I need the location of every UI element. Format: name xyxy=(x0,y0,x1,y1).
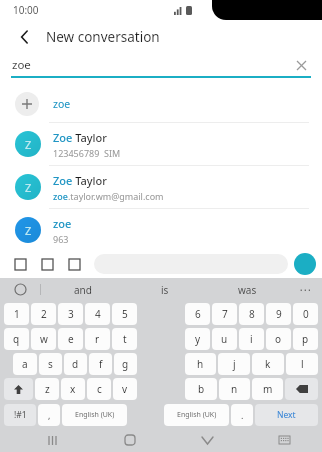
button[interactable]: English (UK) xyxy=(62,404,127,426)
button[interactable]: was xyxy=(206,278,288,301)
staticText: c xyxy=(97,382,102,396)
button[interactable]: s xyxy=(39,353,62,375)
button[interactable]: m xyxy=(252,378,283,400)
button[interactable]: Z xyxy=(5,209,317,251)
staticText: v xyxy=(122,382,128,396)
staticText: p xyxy=(302,332,309,346)
staticText: Z xyxy=(25,223,32,238)
button[interactable]: Z xyxy=(5,166,317,208)
button[interactable]: q xyxy=(4,328,29,350)
staticText: Next xyxy=(277,409,296,421)
button[interactable]: backspace xyxy=(285,378,318,400)
button[interactable]: r xyxy=(85,328,110,350)
button[interactable]: g xyxy=(114,353,137,375)
staticText: Z xyxy=(25,137,32,152)
staticText: j xyxy=(233,357,236,371)
staticText: . xyxy=(241,409,244,421)
button[interactable]: Home xyxy=(116,428,144,452)
button[interactable]: d xyxy=(64,353,87,375)
button[interactable]: !#1 xyxy=(4,404,36,426)
staticText: i xyxy=(250,332,253,346)
staticText: r xyxy=(95,332,100,346)
button[interactable]: 5 xyxy=(112,303,137,325)
button[interactable]: 6 xyxy=(185,303,210,325)
staticText: 7 xyxy=(222,307,228,321)
button[interactable]: c xyxy=(87,378,111,400)
button[interactable]: Z xyxy=(5,123,317,165)
button[interactable]: h xyxy=(185,353,216,375)
button[interactable]: Hide keyboard xyxy=(193,428,221,452)
button[interactable]: x xyxy=(61,378,85,400)
button[interactable]: 3 xyxy=(58,303,83,325)
button[interactable]: 1 xyxy=(4,303,29,325)
button[interactable]: k xyxy=(252,353,284,375)
staticText: s xyxy=(48,357,53,371)
button[interactable]: j xyxy=(218,353,250,375)
button[interactable]: 2 xyxy=(31,303,56,325)
button[interactable]: 4 xyxy=(85,303,110,325)
staticText: a xyxy=(22,357,28,371)
staticText: !#1 xyxy=(14,409,27,421)
staticText: zoe xyxy=(53,216,72,231)
staticText: 123456789 SIM xyxy=(53,147,121,159)
button[interactable]: o xyxy=(266,328,291,350)
button[interactable]: n xyxy=(219,378,250,400)
button[interactable]: Attach 2 xyxy=(64,254,84,274)
button[interactable]: 0 xyxy=(293,303,318,325)
staticText: 10:00 xyxy=(13,3,39,17)
staticText: 0 xyxy=(303,307,309,321)
button[interactable]: Emoji xyxy=(0,278,40,301)
button[interactable]: y xyxy=(185,328,210,350)
staticText: e xyxy=(68,332,74,346)
button[interactable]: shift xyxy=(4,378,33,400)
staticText: ⋯ xyxy=(299,283,311,297)
staticText: m xyxy=(263,382,273,396)
button[interactable]: , xyxy=(38,404,60,426)
button[interactable]: More xyxy=(288,278,322,301)
staticText: English (UK) xyxy=(177,410,217,420)
button[interactable]: v xyxy=(113,378,137,400)
button[interactable]: l xyxy=(286,353,318,375)
staticText: 6 xyxy=(195,307,201,321)
staticText: 963 xyxy=(53,233,69,245)
button[interactable]: Keyboard xyxy=(270,428,298,452)
button[interactable]: u xyxy=(212,328,237,350)
button[interactable]: is xyxy=(124,278,206,301)
button[interactable]: t xyxy=(112,328,137,350)
staticText: 1 xyxy=(14,307,20,321)
button[interactable]: Next xyxy=(255,404,318,426)
button[interactable]: Attach 0 xyxy=(10,254,30,274)
button[interactable]: z xyxy=(35,378,59,400)
button[interactable]: English (UK) xyxy=(164,404,229,426)
button[interactable]: a xyxy=(13,353,37,375)
staticText: Zoe Taylor xyxy=(53,173,107,188)
button[interactable]: b xyxy=(185,378,217,400)
button[interactable]: i xyxy=(239,328,264,350)
button[interactable]: . xyxy=(231,404,253,426)
staticText: l xyxy=(301,357,304,371)
button[interactable]: p xyxy=(293,328,318,350)
staticText: y xyxy=(195,332,201,346)
button[interactable]: Recents xyxy=(39,428,67,452)
button[interactable]: 9 xyxy=(266,303,291,325)
button[interactable]: Clear xyxy=(292,56,310,74)
staticText: 2 xyxy=(41,307,47,321)
button[interactable]: 7 xyxy=(212,303,237,325)
button[interactable]: Send xyxy=(294,253,316,275)
staticText: k xyxy=(265,357,271,371)
staticText: zoe xyxy=(12,57,31,73)
button[interactable]: f xyxy=(89,353,112,375)
button[interactable]: w xyxy=(31,328,56,350)
staticText: New conversation xyxy=(46,28,160,46)
button[interactable]: 8 xyxy=(239,303,264,325)
staticText: 5 xyxy=(122,307,128,321)
button[interactable]: e xyxy=(58,328,83,350)
button[interactable]: Back xyxy=(12,24,38,50)
staticText: Z xyxy=(25,180,32,195)
staticText: t xyxy=(123,332,127,346)
button[interactable]: and xyxy=(41,278,124,301)
button[interactable]: zoe xyxy=(5,86,317,122)
staticText: b xyxy=(198,382,205,396)
button[interactable]: Attach 1 xyxy=(37,254,57,274)
